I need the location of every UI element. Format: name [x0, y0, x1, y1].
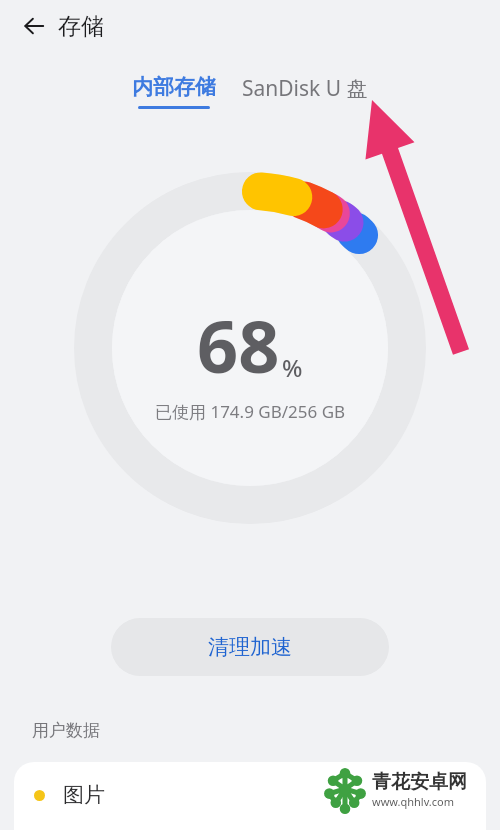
staticText: www.qhhlv.com — [372, 794, 454, 809]
staticText: 图片 — [63, 782, 105, 808]
staticText: 内部存储 — [132, 74, 216, 100]
button[interactable]: 图片 — [14, 762, 486, 830]
staticText: SanDisk U 盘 — [242, 74, 368, 103]
button[interactable]: 清理加速 — [111, 618, 389, 676]
button[interactable]: 内部存储 — [128, 74, 220, 109]
staticText: 清理加速 — [208, 634, 292, 660]
staticText: 用户数据 — [32, 720, 100, 741]
button[interactable]: SanDisk U 盘 — [238, 74, 372, 103]
staticText: 已使用 174.9 GB/256 GB — [155, 400, 346, 423]
staticText: 68 — [197, 296, 280, 394]
staticText: % — [282, 351, 303, 384]
staticText: 存储 — [58, 12, 104, 41]
button[interactable]: Back — [14, 6, 54, 46]
staticText: 青花安卓网 — [372, 770, 467, 794]
